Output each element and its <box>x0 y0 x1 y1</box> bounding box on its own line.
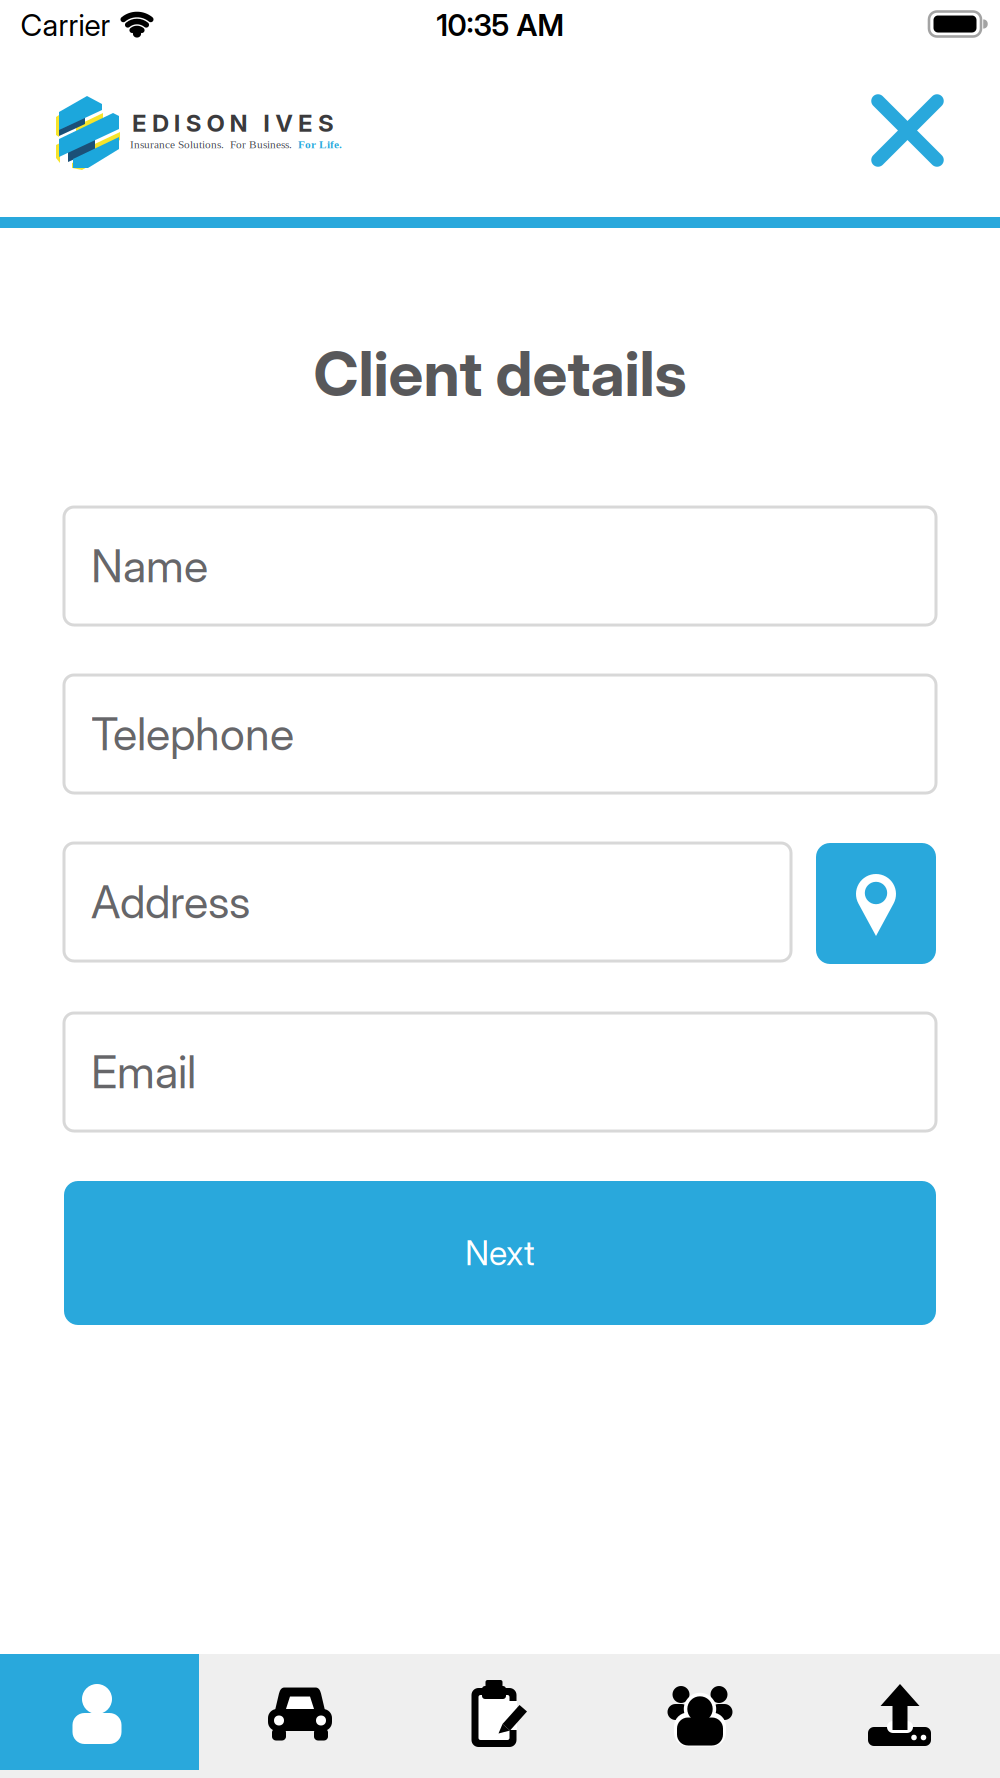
button[interactable]: Upload <box>800 1654 1000 1770</box>
button[interactable]: Name <box>64 507 936 625</box>
button[interactable]: Telephone <box>64 675 936 793</box>
button[interactable]: Locate address on map <box>816 843 936 964</box>
staticText: Carrier <box>20 7 110 43</box>
button[interactable]: Forms <box>400 1654 600 1770</box>
staticText: 10:35 AM <box>436 7 563 43</box>
staticText: D <box>152 108 169 137</box>
staticText: Name <box>91 539 208 593</box>
staticText: I <box>174 108 181 137</box>
button[interactable]: Address <box>64 843 791 961</box>
staticText: E <box>298 108 313 137</box>
staticText: I <box>263 108 270 137</box>
staticText: Email <box>91 1045 196 1099</box>
staticText: Telephone <box>91 707 294 761</box>
button[interactable]: Clients <box>600 1654 800 1770</box>
button[interactable]: Next <box>64 1181 936 1325</box>
staticText: O <box>207 108 225 137</box>
staticText: Next <box>465 1232 535 1273</box>
button[interactable]: Client <box>0 1654 199 1770</box>
staticText: S <box>186 108 202 137</box>
staticText: For Life. <box>298 138 342 151</box>
staticText: Address <box>91 875 250 929</box>
staticText: Insurance Solutions. For Business. <box>130 138 298 151</box>
button[interactable]: Email <box>64 1013 936 1131</box>
staticText: N <box>229 108 247 137</box>
staticText: S <box>318 108 334 137</box>
staticText: E <box>132 108 147 137</box>
button[interactable]: Close <box>868 91 947 170</box>
staticText: V <box>275 108 293 137</box>
button[interactable]: Vehicle <box>200 1654 400 1770</box>
staticText: Client details <box>313 336 686 411</box>
